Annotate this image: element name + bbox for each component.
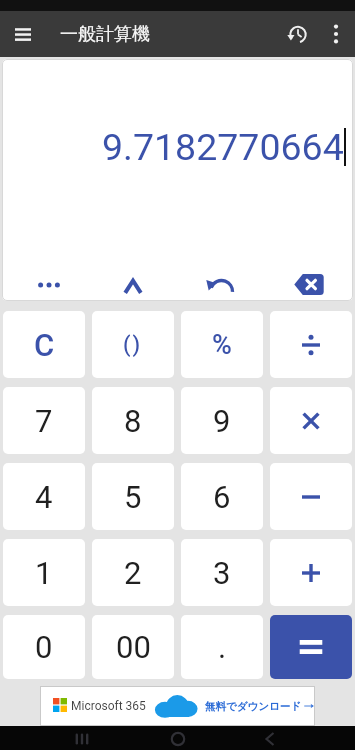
button[interactable] [2, 268, 89, 301]
button[interactable]: 5 [92, 463, 174, 530]
button[interactable] [317, 11, 355, 57]
button[interactable]: 7 [3, 387, 85, 454]
button[interactable]: Microsoft 365 [40, 686, 315, 726]
staticText: 2 [124, 555, 142, 591]
button[interactable] [273, 12, 317, 56]
button[interactable]: 9 [181, 387, 263, 454]
staticText: 9 [213, 403, 231, 439]
button[interactable] [270, 387, 352, 454]
staticText: 0 [35, 629, 53, 665]
staticText: . [218, 629, 227, 665]
staticText: 3 [213, 555, 231, 591]
button[interactable] [254, 726, 286, 750]
button[interactable]: 1 [3, 539, 85, 606]
staticText: 7 [35, 403, 53, 439]
button[interactable]: 0 [3, 615, 85, 679]
button[interactable]: 8 [92, 387, 174, 454]
button[interactable] [66, 726, 98, 750]
button[interactable]: 6 [181, 463, 263, 530]
button[interactable]: % [181, 311, 263, 378]
button[interactable] [270, 311, 352, 378]
staticText: % [212, 329, 232, 361]
staticText: 6 [213, 479, 231, 515]
button[interactable] [265, 268, 353, 301]
staticText: 一般計算機 [60, 23, 150, 46]
staticText: 無料でダウンロード → [205, 700, 315, 713]
button[interactable]: () [92, 311, 174, 378]
staticText: 1 [35, 555, 53, 591]
staticText: 8 [124, 403, 142, 439]
button[interactable] [270, 463, 352, 530]
staticText: () [123, 332, 143, 357]
button[interactable] [89, 268, 177, 301]
button[interactable]: 2 [92, 539, 174, 606]
button[interactable]: 4 [3, 463, 85, 530]
button[interactable] [162, 726, 194, 750]
button[interactable] [270, 615, 352, 679]
button[interactable]: . [181, 615, 263, 679]
button[interactable] [0, 11, 46, 57]
button[interactable] [270, 539, 352, 606]
staticText: 5 [124, 479, 142, 515]
button[interactable]: 00 [92, 615, 174, 679]
staticText: C [34, 327, 55, 363]
staticText: 4 [35, 479, 53, 515]
staticText: 00 [116, 629, 151, 665]
button[interactable] [177, 268, 265, 301]
button[interactable]: C [3, 311, 85, 378]
staticText: Microsoft 365 [71, 699, 146, 713]
button[interactable]: 3 [181, 539, 263, 606]
staticText: 9.7182770664 [102, 125, 344, 169]
